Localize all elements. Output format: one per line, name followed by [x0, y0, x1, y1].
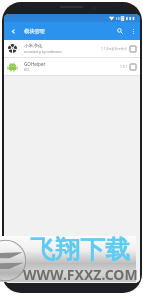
staticText: 小米净化	[24, 43, 43, 49]
staticText: GO	[24, 68, 29, 72]
button[interactable]: GOHelper	[4, 58, 140, 76]
staticText: GOHelper	[24, 61, 46, 67]
staticText: cn.xiaomi.p by codensors	[24, 50, 62, 54]
button[interactable]: More options	[127, 25, 139, 37]
button[interactable]: Back	[6, 24, 21, 39]
button[interactable]: Search	[113, 24, 127, 38]
staticText: 飞翔下载	[30, 234, 130, 265]
button[interactable]: 小米净化	[4, 40, 140, 58]
staticText: 1.1.0已更新于昨日	[101, 47, 128, 51]
staticText: 模块管理	[24, 28, 45, 35]
staticText: WWW.FXXZ.COM	[23, 265, 138, 284]
staticText: 1.0.1	[120, 65, 128, 69]
